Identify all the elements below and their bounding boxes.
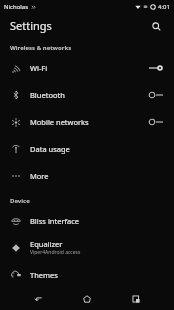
staticText: Device [10,197,30,205]
staticText: Nicholas [4,3,29,11]
staticText: Sounds [30,294,57,304]
staticText: Bluetooth [30,90,65,100]
button[interactable]: Search [146,16,166,36]
button[interactable]: Bluetooth toggle [146,87,166,103]
button[interactable]: Home [76,288,98,310]
button[interactable]: Wi-Fi [0,54,174,81]
button[interactable]: Equalizer [0,234,174,261]
button[interactable]: Themes [0,261,174,288]
staticText: Viper4Android access [30,249,81,256]
button[interactable]: Mobile networks [0,108,174,135]
staticText: Equalizer [30,239,63,249]
button[interactable]: Back [27,288,49,310]
button[interactable]: Wi-Fi toggle [146,60,166,76]
staticText: Mobile networks [30,117,89,127]
button[interactable]: Mobile networks toggle [146,114,166,130]
staticText: Settings [10,18,52,33]
button[interactable]: Bluetooth [0,81,174,108]
staticText: More [30,171,49,181]
button[interactable]: Data usage [0,135,174,162]
staticText: Themes [30,270,58,280]
button[interactable]: More [0,162,174,189]
staticText: 4:01 [158,3,170,11]
button[interactable]: Bliss interface [0,207,174,234]
button[interactable]: Sounds [0,288,174,310]
button[interactable]: Recent apps [125,288,147,310]
staticText: Wireless & networks [10,44,72,52]
staticText: Data usage [30,144,70,154]
staticText: Wi-Fi [30,63,48,73]
staticText: Bliss interface [30,216,80,226]
